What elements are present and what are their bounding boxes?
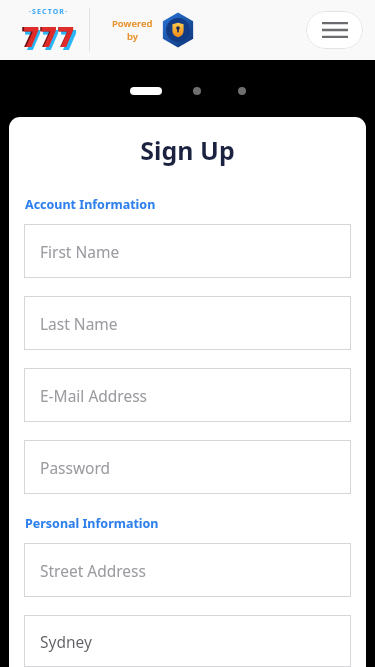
staticText: 777	[24, 19, 78, 55]
staticText: E-Mail Address	[40, 385, 148, 406]
staticText: 777	[23, 17, 76, 53]
staticText: 777	[21, 16, 75, 52]
staticText: by	[127, 30, 138, 43]
button[interactable]: Sector 777 home	[10, 7, 88, 53]
button[interactable]: Slide 3	[238, 87, 246, 95]
staticText: Sydney	[40, 631, 92, 652]
staticText: Personal Information	[25, 515, 159, 532]
button[interactable]: Slide 1	[130, 87, 162, 95]
staticText: Password	[40, 457, 111, 478]
button[interactable]: Last Name	[24, 296, 351, 350]
button[interactable]: Password	[24, 440, 351, 494]
staticText: Street Address	[40, 560, 146, 581]
button[interactable]: Sydney	[24, 615, 351, 667]
staticText: Account Information	[25, 196, 156, 213]
staticText: ·SECTOR·	[29, 7, 69, 17]
button[interactable]: E-Mail Address	[24, 368, 351, 422]
button[interactable]: Street Address	[24, 543, 351, 597]
staticText: Sign Up	[9, 133, 366, 167]
staticText: Last Name	[40, 313, 118, 334]
button[interactable]: Menu	[306, 11, 363, 49]
staticText: Powered	[112, 17, 153, 30]
button[interactable]: Slide 2	[193, 87, 201, 95]
staticText: First Name	[40, 241, 120, 262]
button[interactable]: First Name	[24, 224, 351, 278]
